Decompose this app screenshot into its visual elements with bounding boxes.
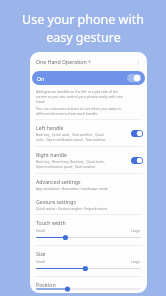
staticText: Use your phone with [22, 11, 144, 28]
button[interactable]: More options [133, 57, 143, 67]
button[interactable]: Toggle Left handle [130, 129, 144, 138]
staticText: Back key , Quick tools , Task switcher ,… [36, 132, 106, 142]
button[interactable]: Left handle [30, 120, 147, 146]
staticText: Size [36, 250, 46, 257]
button[interactable]: Toggle Right handle [130, 156, 144, 165]
staticText: Large [131, 259, 141, 264]
staticText: One Hand Operation + [36, 58, 92, 65]
button[interactable]: Gesture settings [30, 194, 147, 214]
staticText: Touch width [36, 219, 66, 226]
staticText: Add gesture handles to the left or right… [36, 89, 123, 104]
staticText: Gesture settings [36, 198, 76, 205]
button[interactable]: Right handle [30, 147, 147, 173]
button[interactable]: Touch width slider [36, 234, 141, 241]
staticText: Quick action • Gesture angles • Swipe di… [36, 206, 108, 210]
staticText: Left handle [36, 124, 64, 131]
button[interactable]: Size slider [36, 265, 141, 272]
staticText: Position [36, 281, 56, 288]
staticText: Right handle [36, 151, 67, 158]
staticText: Small [36, 259, 45, 264]
staticText: easy gesture [46, 29, 121, 46]
staticText: Large [131, 228, 141, 233]
staticText: On [37, 75, 45, 82]
staticText: Back key , Recent key, Back key , Quick … [36, 159, 106, 169]
button[interactable]: On [32, 71, 145, 85]
staticText: You can customise actions to use when yo… [36, 106, 122, 116]
button[interactable]: Advanced settings [30, 174, 147, 194]
staticText: Advanced settings [36, 178, 81, 185]
staticText: App exceptions • Animation • Landscape m… [36, 186, 108, 190]
staticText: Small [36, 228, 45, 233]
